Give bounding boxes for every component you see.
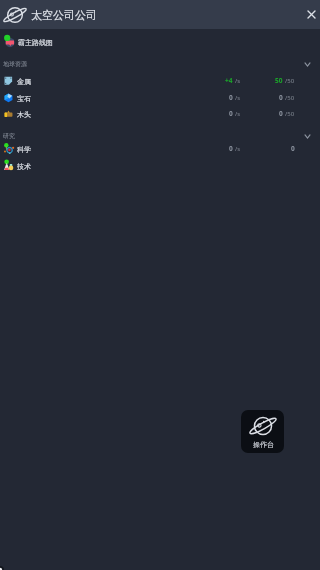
button[interactable]: 操作台 bbox=[241, 410, 284, 453]
staticText: 操作台 bbox=[253, 440, 274, 449]
staticText: /s bbox=[235, 145, 241, 153]
staticText: 技术 bbox=[17, 162, 31, 171]
staticText: 金属 bbox=[17, 77, 31, 86]
staticText: /s bbox=[235, 94, 241, 102]
staticText: 宝石 bbox=[17, 94, 31, 103]
staticText: 科学 bbox=[17, 145, 31, 154]
staticText: 0 bbox=[229, 109, 233, 118]
staticText: 0 bbox=[291, 144, 295, 153]
staticText: /50 bbox=[285, 77, 295, 85]
staticText: 木头 bbox=[17, 110, 31, 119]
staticText: 0 bbox=[279, 93, 283, 102]
staticText: 0 bbox=[229, 93, 233, 102]
button[interactable]: 金属 bbox=[0, 73, 320, 90]
button[interactable]: 宝石 bbox=[0, 90, 320, 107]
staticText: 50 bbox=[275, 76, 283, 85]
staticText: /50 bbox=[285, 94, 295, 102]
staticText: /s bbox=[235, 77, 241, 85]
button[interactable]: 科学 bbox=[0, 141, 320, 158]
button[interactable]: 霸主路线图 bbox=[0, 29, 320, 52]
staticText: +4 bbox=[225, 76, 233, 85]
button[interactable]: 地球资源 bbox=[0, 56, 320, 71]
button[interactable]: 研究 bbox=[0, 128, 320, 143]
button[interactable]: 技术 bbox=[0, 158, 320, 175]
staticText: 地球资源 bbox=[3, 60, 27, 68]
staticText: 0 bbox=[229, 144, 233, 153]
staticText: /50 bbox=[285, 110, 295, 118]
button[interactable]: 木头 bbox=[0, 106, 320, 123]
staticText: 霸主路线图 bbox=[18, 38, 53, 47]
button[interactable]: Close bbox=[296, 3, 320, 27]
staticText: 太空公司公司 bbox=[31, 8, 97, 22]
staticText: 研究 bbox=[3, 132, 15, 140]
staticText: 0 bbox=[279, 109, 283, 118]
staticText: /s bbox=[235, 110, 241, 118]
